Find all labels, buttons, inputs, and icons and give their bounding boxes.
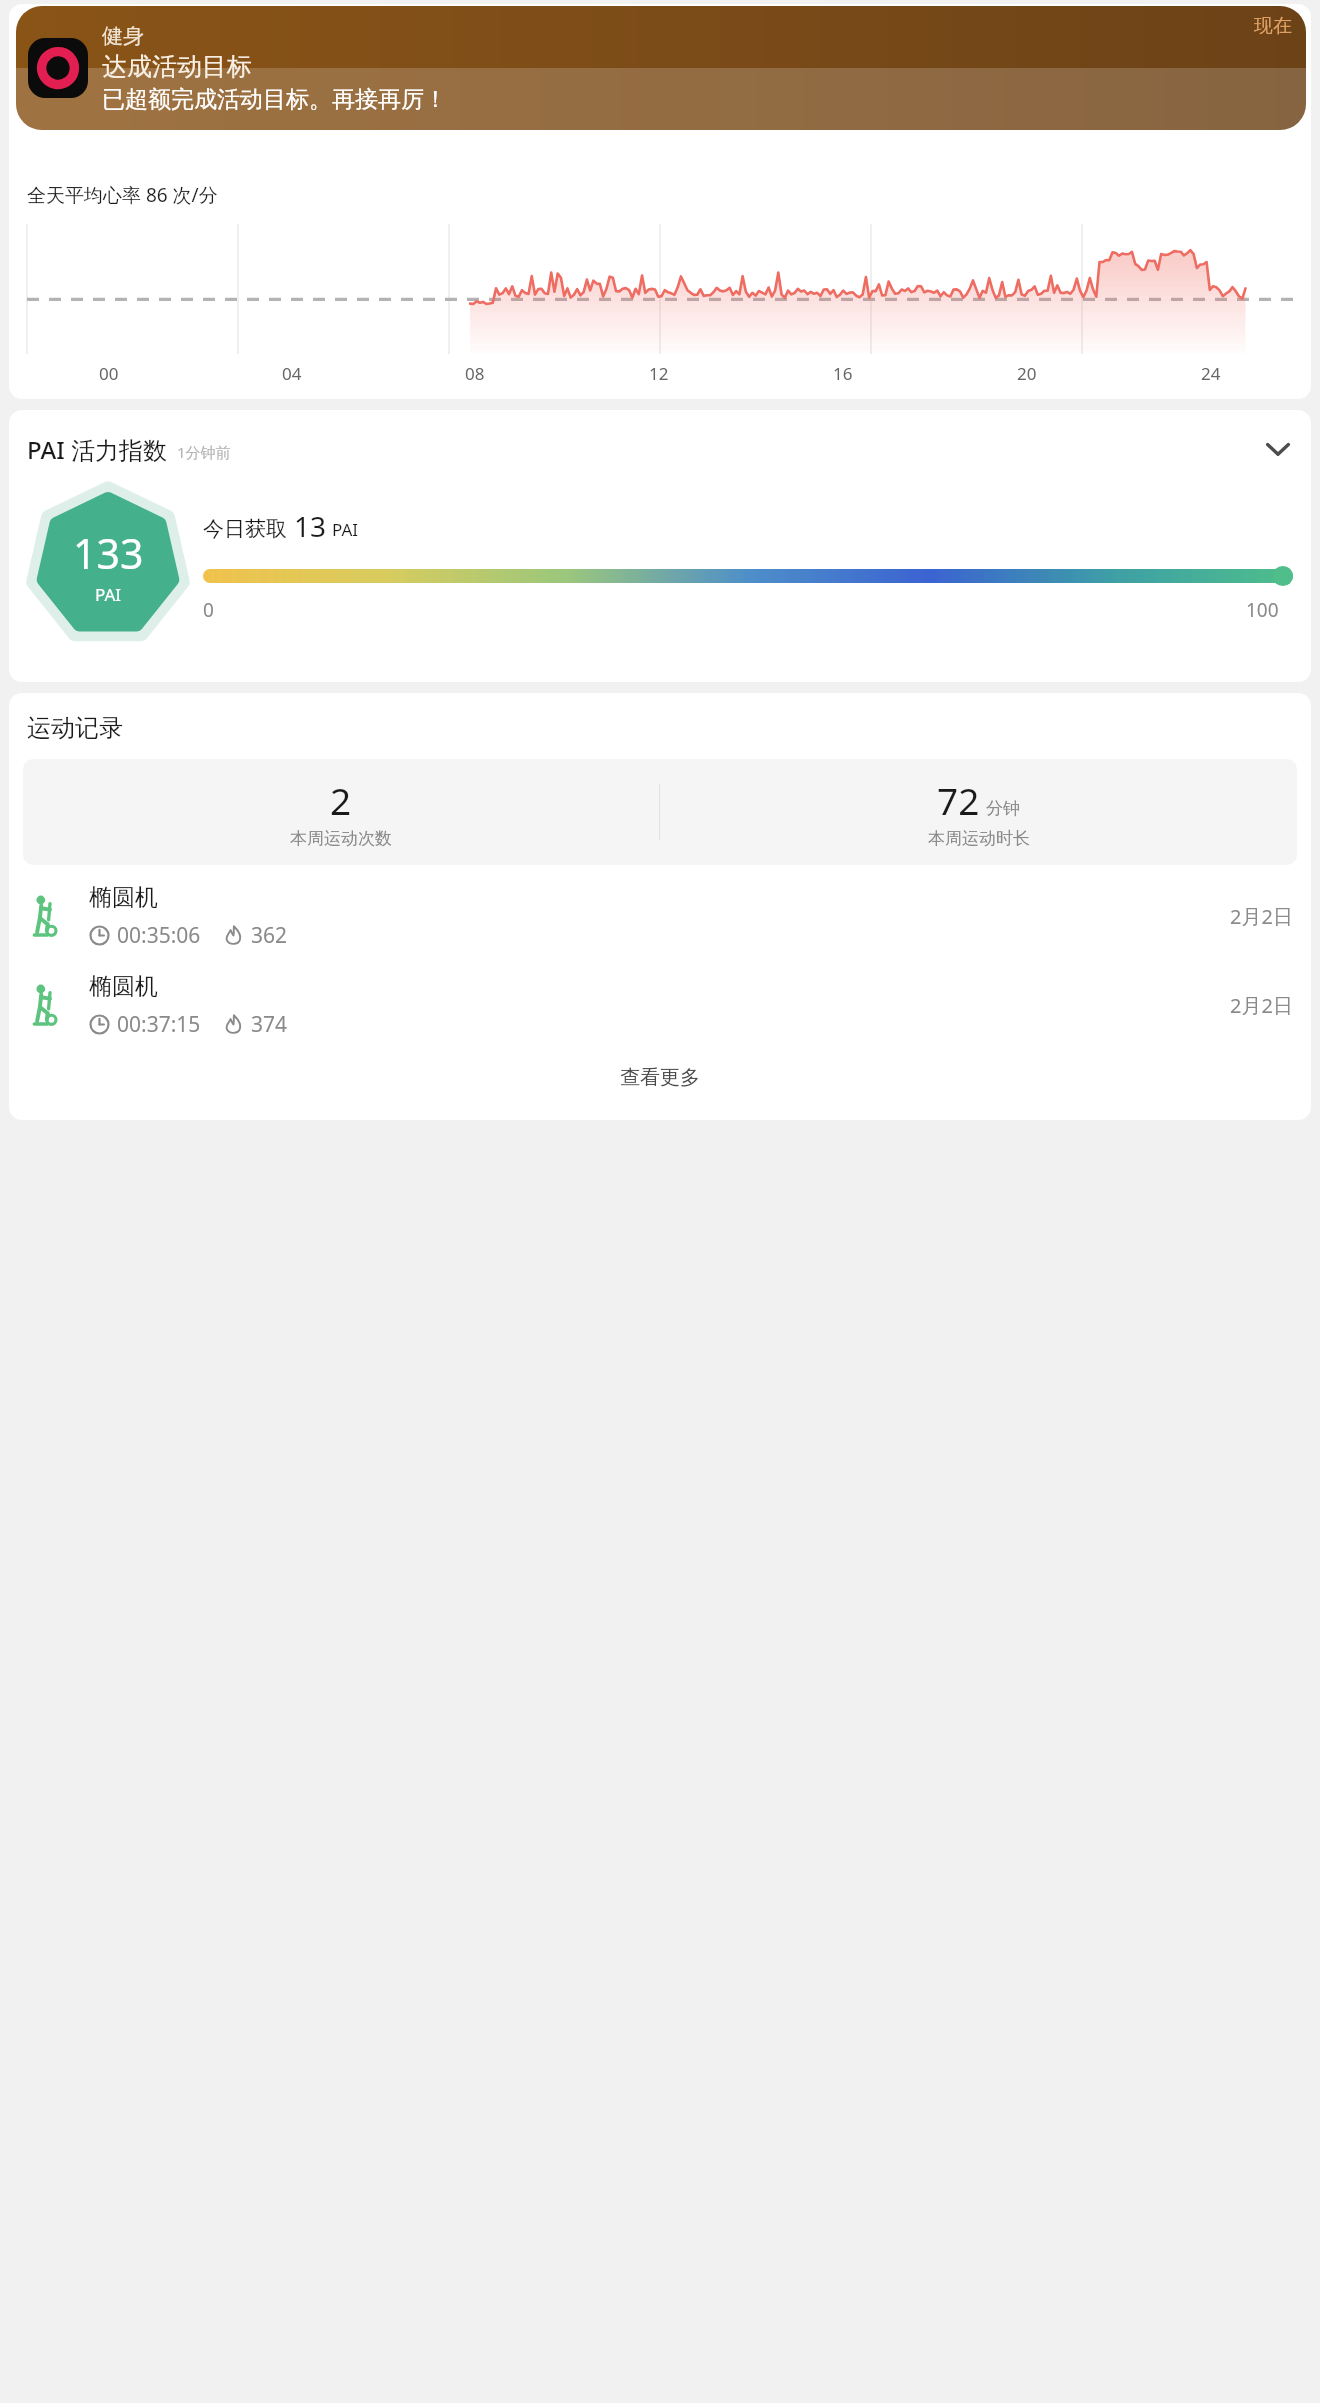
staticText: 00: [99, 362, 119, 385]
staticText: 16: [833, 362, 853, 385]
staticText: 13: [294, 507, 327, 545]
button[interactable]: 查看更多: [9, 1057, 1311, 1098]
staticText: 全天平均心率 86 次/分: [27, 182, 218, 208]
staticText: 最高心率: [173, 95, 249, 119]
staticText: 2月2日: [1230, 903, 1293, 930]
staticText: 今日获取: [203, 516, 287, 542]
staticText: 最低心率: [173, 40, 249, 64]
staticText: 04: [282, 362, 302, 385]
staticText: 分钟: [986, 798, 1020, 819]
staticText: 08: [465, 362, 485, 385]
staticText: 舒缓放松: [63, 105, 127, 125]
staticText: 2月2日: [1230, 992, 1293, 1019]
staticText: 本周运动次数: [290, 828, 392, 849]
staticText: 100: [1246, 597, 1279, 623]
button[interactable]: 椭圆机: [9, 879, 1311, 954]
button[interactable]: 健身: [16, 6, 1306, 130]
staticText: 次/分: [310, 95, 351, 118]
staticText: 已超额完成活动目标。再接再厉！: [102, 85, 447, 114]
staticText: 达成活动目标: [102, 51, 252, 82]
staticText: 椭圆机: [89, 883, 158, 912]
staticText: 椭圆机: [89, 972, 158, 1001]
staticText: 1分钟前: [177, 442, 231, 462]
staticText: 健身: [102, 23, 144, 49]
staticText: 374: [251, 1010, 288, 1039]
staticText: 查看更多: [620, 1065, 700, 1090]
staticText: 20: [1017, 362, 1037, 385]
button[interactable]: 椭圆机: [9, 968, 1311, 1043]
staticText: 0: [203, 597, 214, 623]
staticText: 00:37:15: [117, 1010, 201, 1039]
staticText: 现在: [1254, 14, 1292, 38]
staticText: PAI: [332, 518, 359, 541]
button[interactable]: 展开: [1257, 428, 1299, 470]
staticText: 本周运动时长: [928, 828, 1030, 849]
staticText: 00:35:06: [117, 921, 201, 950]
staticText: 24: [1201, 362, 1221, 385]
button[interactable]: 运动记录: [9, 693, 1311, 1120]
staticText: 运动记录: [27, 713, 123, 743]
button[interactable]: 86: [9, 4, 1311, 399]
staticText: 144: [255, 83, 305, 122]
staticText: 133: [73, 525, 144, 581]
button[interactable]: PAI 活力指数: [9, 410, 1311, 682]
staticText: 86: [71, 40, 120, 97]
staticText: 12: [649, 362, 669, 385]
staticText: PAI 活力指数: [27, 433, 167, 466]
staticText: PAI: [95, 583, 122, 606]
staticText: 362: [251, 921, 288, 950]
staticText: 2: [330, 775, 352, 825]
staticText: 72: [937, 775, 980, 825]
